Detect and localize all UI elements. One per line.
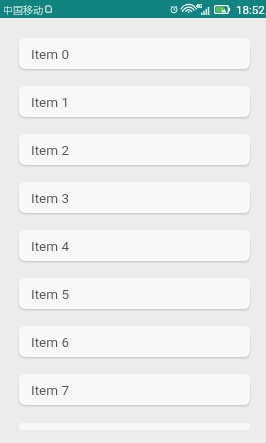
staticText: Item 4: [31, 238, 70, 254]
button[interactable]: Item 7: [19, 374, 250, 405]
button[interactable]: Item 4: [19, 230, 250, 261]
staticText: Item 7: [31, 382, 70, 398]
button[interactable]: Item 1: [19, 86, 250, 117]
staticText: 4G: [196, 3, 203, 9]
staticText: Item 2: [31, 142, 70, 158]
staticText: 中国移动: [3, 2, 43, 16]
button[interactable]: Item 5: [19, 278, 250, 309]
staticText: Item 6: [31, 334, 70, 350]
staticText: 18:52: [236, 3, 265, 16]
button[interactable]: Item 0: [19, 38, 250, 69]
button[interactable]: Item 3: [19, 182, 250, 213]
staticText: Item 3: [31, 190, 70, 206]
staticText: Item 0: [31, 46, 70, 62]
staticText: Item 5: [31, 286, 70, 302]
button[interactable]: Item 2: [19, 134, 250, 165]
staticText: Item 1: [31, 94, 70, 110]
button[interactable]: Item 6: [19, 326, 250, 357]
